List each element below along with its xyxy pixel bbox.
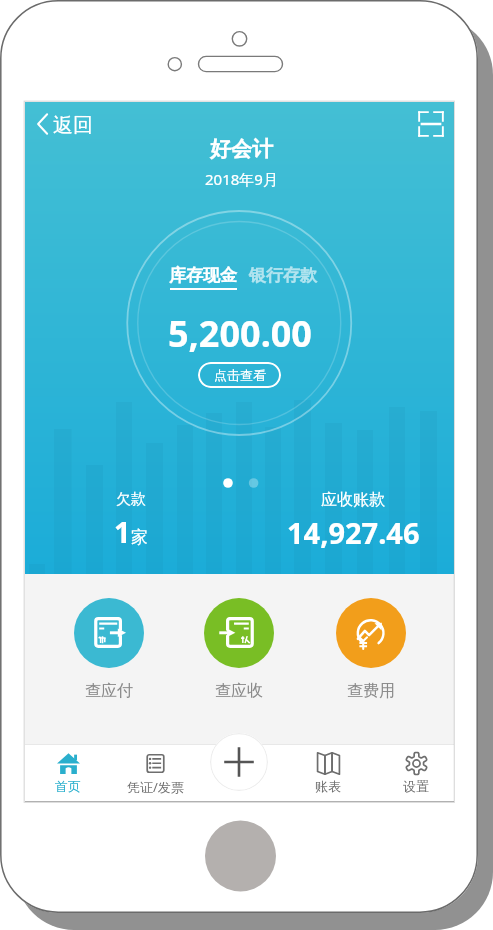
staticText: 好会计: [210, 136, 273, 162]
staticText: 查应付: [85, 681, 133, 701]
staticText: 查应收: [215, 681, 263, 701]
staticText: 账表: [315, 778, 341, 794]
button[interactable]: 查应付: [64, 598, 154, 701]
staticText: 5,200.00: [168, 309, 312, 358]
button[interactable]: 扫一扫: [411, 104, 451, 144]
staticText: 首页: [55, 778, 81, 794]
button[interactable]: 设置: [373, 744, 459, 802]
staticText: 2018年9月: [205, 169, 278, 189]
staticText: 点击查看: [214, 367, 266, 383]
staticText: 设置: [403, 778, 429, 794]
staticText: 1: [114, 512, 131, 551]
button[interactable]: 查应收: [194, 598, 284, 701]
staticText: 库存现金: [169, 265, 237, 286]
button[interactable]: 凭证/发票: [112, 744, 198, 802]
button[interactable]: 新增: [210, 733, 268, 791]
button[interactable]: 返回: [37, 111, 93, 136]
button[interactable]: 点击查看: [198, 362, 281, 388]
staticText: 欠款: [116, 490, 146, 509]
staticText: 凭证/发票: [127, 778, 184, 796]
staticText: 查费用: [347, 681, 395, 701]
button[interactable]: 银行存款: [249, 265, 317, 286]
button[interactable]: 账表: [285, 744, 371, 802]
staticText: 家: [131, 527, 148, 548]
staticText: 返回: [53, 113, 93, 138]
staticText: 14,927.46: [287, 513, 420, 552]
staticText: 应收账款: [321, 490, 385, 510]
button[interactable]: 首页: [25, 744, 111, 802]
button[interactable]: 库存现金: [169, 265, 237, 290]
button[interactable]: 查费用: [326, 598, 416, 701]
